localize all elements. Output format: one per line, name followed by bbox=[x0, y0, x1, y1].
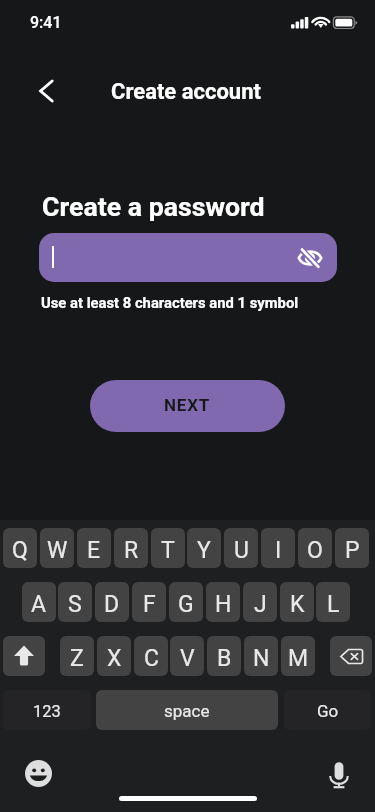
button[interactable]: V bbox=[170, 636, 204, 676]
button[interactable]: Back bbox=[26, 70, 68, 112]
staticText: N bbox=[253, 645, 270, 672]
staticText: F bbox=[143, 591, 156, 618]
staticText: Z bbox=[70, 645, 84, 672]
staticText: I bbox=[275, 537, 282, 564]
button[interactable]: Emoji bbox=[24, 759, 53, 788]
button[interactable]: H bbox=[206, 582, 240, 622]
staticText: X bbox=[107, 645, 122, 672]
staticText: E bbox=[87, 537, 101, 564]
staticText: W bbox=[47, 537, 68, 564]
button[interactable]: Y bbox=[187, 528, 221, 568]
staticText: C bbox=[144, 645, 159, 672]
button[interactable]: L bbox=[316, 582, 350, 622]
button[interactable]: Hide password bbox=[297, 245, 323, 271]
staticText: R bbox=[124, 537, 139, 564]
button[interactable]: E bbox=[77, 528, 111, 568]
staticText: space bbox=[164, 701, 210, 721]
staticText: D bbox=[104, 591, 120, 618]
button[interactable]: M bbox=[281, 636, 315, 676]
staticText: J bbox=[254, 591, 267, 618]
button[interactable]: X bbox=[97, 636, 131, 676]
button[interactable]: K bbox=[280, 582, 314, 622]
button[interactable]: J bbox=[243, 582, 277, 622]
button[interactable]: B bbox=[207, 636, 241, 676]
button[interactable]: U bbox=[224, 528, 258, 568]
staticText: Create account bbox=[111, 79, 261, 105]
staticText: Use at least 8 characters and 1 symbol bbox=[41, 294, 299, 311]
button[interactable]: Hide password bbox=[39, 233, 337, 282]
button[interactable]: W bbox=[40, 528, 74, 568]
button[interactable]: G bbox=[169, 582, 203, 622]
staticText: P bbox=[345, 537, 360, 564]
button[interactable]: P bbox=[335, 528, 369, 568]
button[interactable]: T bbox=[151, 528, 185, 568]
button[interactable]: N bbox=[244, 636, 278, 676]
staticText: T bbox=[161, 537, 175, 564]
staticText: 123 bbox=[33, 702, 61, 721]
button[interactable]: C bbox=[134, 636, 168, 676]
button[interactable]: NEXT bbox=[90, 380, 285, 432]
button[interactable]: F bbox=[132, 582, 166, 622]
staticText: NEXT bbox=[164, 395, 211, 415]
staticText: Go bbox=[317, 701, 339, 721]
button[interactable]: Go bbox=[284, 690, 371, 730]
button[interactable]: I bbox=[261, 528, 295, 568]
button[interactable]: A bbox=[22, 582, 56, 622]
staticText: A bbox=[31, 591, 47, 618]
button[interactable]: Shift bbox=[3, 636, 45, 676]
button[interactable]: D bbox=[95, 582, 129, 622]
button[interactable]: Z bbox=[60, 636, 94, 676]
staticText: V bbox=[180, 645, 195, 672]
button[interactable]: Q bbox=[3, 528, 37, 568]
button[interactable]: Backspace bbox=[330, 636, 372, 676]
button[interactable]: space bbox=[96, 690, 278, 730]
button[interactable]: R bbox=[114, 528, 148, 568]
staticText: Create a password bbox=[42, 191, 265, 222]
staticText: K bbox=[290, 591, 305, 618]
staticText: L bbox=[327, 591, 340, 618]
staticText: O bbox=[307, 537, 323, 564]
staticText: G bbox=[178, 591, 194, 618]
staticText: M bbox=[288, 645, 309, 672]
button[interactable]: O bbox=[298, 528, 332, 568]
staticText: H bbox=[215, 591, 232, 618]
staticText: B bbox=[217, 645, 232, 672]
staticText: S bbox=[68, 591, 82, 618]
staticText: Q bbox=[12, 537, 28, 564]
staticText: U bbox=[234, 537, 249, 564]
staticText: Y bbox=[197, 537, 211, 564]
button[interactable]: S bbox=[58, 582, 92, 622]
button[interactable]: 123 bbox=[3, 690, 91, 730]
staticText: 9:41 bbox=[30, 13, 62, 32]
button[interactable]: Voice input bbox=[324, 761, 353, 790]
